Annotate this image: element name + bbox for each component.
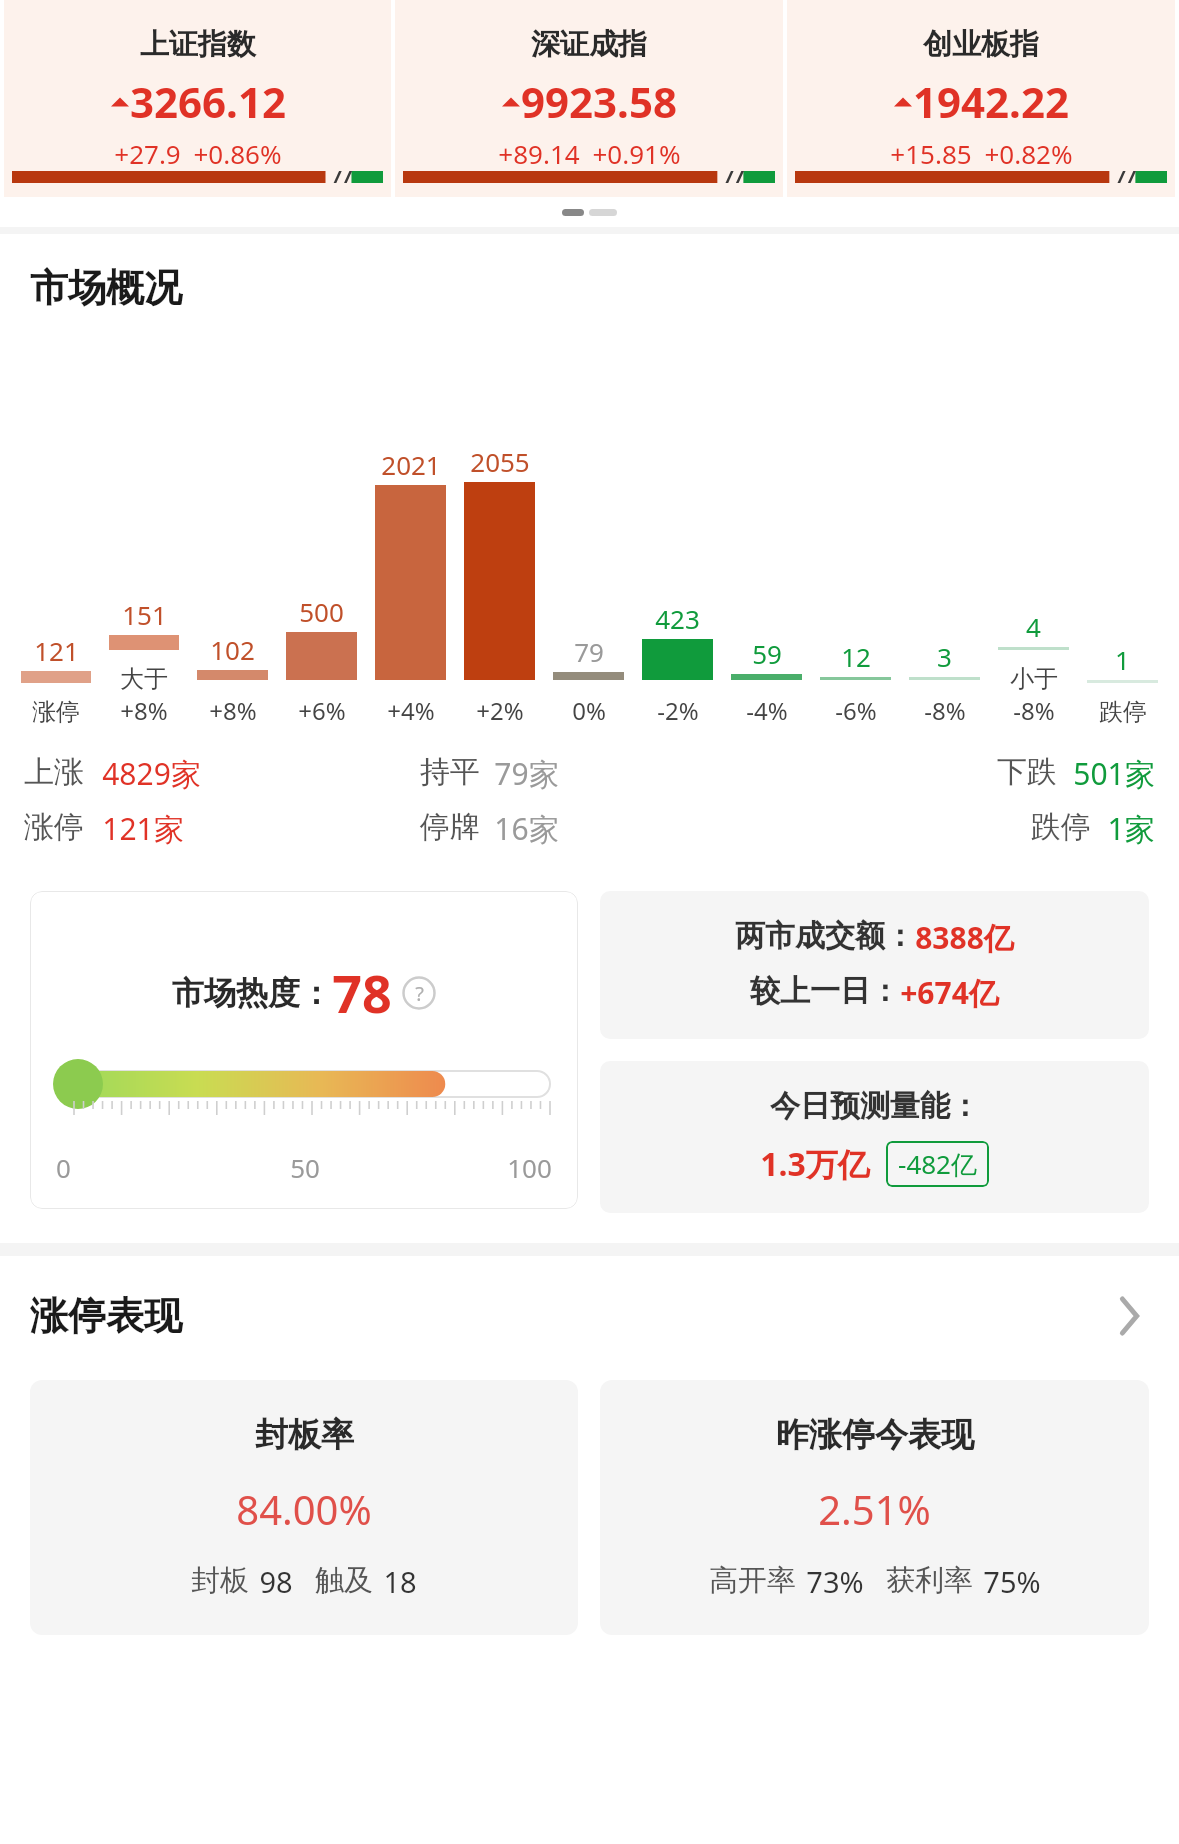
staticText: +27.9 — [114, 136, 181, 171]
staticText: 停牌 — [420, 808, 480, 846]
staticText: 100 — [507, 1150, 552, 1185]
staticText: 3266.12 — [130, 73, 286, 130]
button[interactable]: 上证指数 — [4, 0, 391, 197]
button[interactable]: 创业板指 — [787, 0, 1175, 197]
button[interactable]: 封板率 — [30, 1380, 578, 1635]
staticText: 2021 — [381, 447, 441, 482]
staticText: 0% — [572, 694, 606, 727]
staticText: 下跌 — [997, 753, 1057, 791]
staticText: 触及 — [315, 1562, 373, 1599]
staticText: 跌停 — [1031, 808, 1091, 846]
staticText: 涨停 — [24, 808, 84, 846]
staticText: -6% — [835, 694, 877, 727]
staticText: -8% — [1013, 694, 1055, 727]
staticText: 4829家 — [102, 753, 201, 794]
staticText: 市场概况 — [30, 264, 182, 312]
staticText: +0.91% — [592, 136, 681, 171]
staticText: 121 — [34, 633, 79, 668]
staticText: 2055 — [470, 444, 530, 479]
staticText: 18 — [383, 1562, 417, 1601]
button[interactable]: 两市成交额： — [600, 891, 1149, 1039]
staticText: +89.14 — [498, 136, 580, 171]
staticText: +4% — [387, 694, 435, 727]
staticText: 涨停表现 — [30, 1292, 182, 1340]
staticText: 12 — [841, 639, 871, 674]
staticText: 2.51% — [818, 1482, 931, 1536]
staticText: +674亿 — [900, 972, 999, 1013]
staticText: 1942.22 — [913, 73, 1069, 130]
staticText: 98 — [259, 1562, 293, 1601]
staticText: 16家 — [494, 808, 559, 849]
staticText: 两市成交额： — [735, 917, 915, 955]
staticText: 0 — [56, 1150, 71, 1185]
staticText: +0.82% — [984, 136, 1073, 171]
staticText: 深证成指 — [531, 26, 647, 63]
staticText: 79家 — [494, 753, 559, 794]
staticText: ? — [415, 980, 424, 1007]
staticText: 1家 — [1107, 808, 1155, 849]
button[interactable]: 昨涨停今表现 — [600, 1380, 1149, 1635]
staticText: 昨涨停今表现 — [776, 1414, 974, 1456]
staticText: 423 — [655, 601, 700, 636]
staticText: 较上一日： — [750, 972, 900, 1010]
staticText: 高开率 — [709, 1562, 796, 1599]
staticText: 获利率 — [886, 1562, 973, 1599]
staticText: 1 — [1115, 642, 1130, 677]
staticText: +0.86% — [193, 136, 282, 171]
button[interactable]: 说明 — [402, 976, 436, 1010]
staticText: 9923.58 — [521, 73, 677, 130]
staticText: 151 — [122, 597, 167, 632]
staticText: +15.85 — [890, 136, 972, 171]
button[interactable]: 涨停表现 — [0, 1292, 1179, 1340]
other: 更多 — [1109, 1296, 1149, 1336]
staticText: 121家 — [102, 808, 184, 849]
staticText: 上涨 — [24, 753, 84, 791]
staticText: 501家 — [1073, 753, 1155, 794]
staticText: 上证指数 — [140, 26, 256, 63]
staticText: +8% — [209, 694, 257, 727]
staticText: +8% — [120, 694, 168, 727]
staticText: 1.3万亿 — [760, 1142, 870, 1186]
staticText: 75% — [983, 1562, 1041, 1601]
staticText: -4% — [746, 694, 788, 727]
staticText: 78 — [332, 957, 392, 1028]
staticText: 封板率 — [255, 1414, 354, 1456]
staticText: 84.00% — [236, 1482, 372, 1536]
staticText: 500 — [299, 594, 344, 629]
staticText: +6% — [298, 694, 346, 727]
staticText: -482亿 — [898, 1146, 977, 1182]
staticText: 小于 — [1010, 664, 1058, 694]
staticText: +2% — [476, 694, 524, 727]
staticText: 59 — [752, 636, 782, 671]
staticText: 102 — [210, 632, 255, 667]
staticText: 73% — [806, 1562, 864, 1601]
staticText: 大于 — [120, 664, 168, 694]
staticText: 3 — [937, 639, 952, 674]
staticText: 50 — [290, 1150, 320, 1185]
staticText: -2% — [657, 694, 699, 727]
staticText: 持平 — [420, 753, 480, 791]
button[interactable]: 今日预测量能： — [600, 1061, 1149, 1213]
button[interactable]: 市场热度： — [30, 891, 578, 1209]
staticText: 8388亿 — [915, 917, 1014, 958]
staticText: 涨停 — [32, 697, 80, 727]
staticText: 今日预测量能： — [770, 1087, 980, 1125]
staticText: 跌停 — [1099, 697, 1147, 727]
staticText: 4 — [1026, 609, 1041, 644]
button[interactable]: 深证成指 — [395, 0, 783, 197]
staticText: 79 — [574, 634, 604, 669]
staticText: 创业板指 — [923, 26, 1039, 63]
staticText: 封板 — [191, 1562, 249, 1599]
staticText: 市场热度： — [172, 973, 332, 1013]
staticText: -8% — [924, 694, 966, 727]
